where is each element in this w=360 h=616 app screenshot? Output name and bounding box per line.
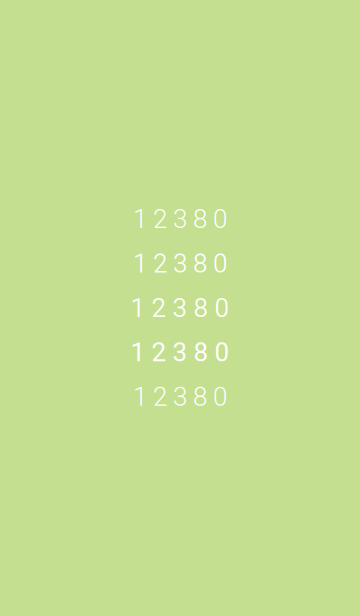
staticText: 1 2 3 8 0 bbox=[130, 337, 229, 368]
staticText: 1 2 3 8 0 bbox=[133, 382, 227, 412]
staticText: 1 2 3 8 0 bbox=[133, 248, 227, 279]
staticText: 1 2 3 8 0 bbox=[130, 293, 229, 323]
staticText: 1 2 3 8 0 bbox=[133, 204, 227, 234]
